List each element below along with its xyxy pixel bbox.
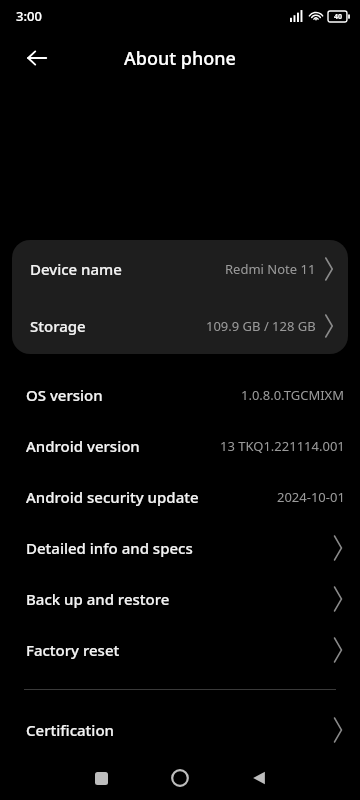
button[interactable]: OS version (0, 369, 360, 420)
staticText: 109.9 GB / 128 GB (206, 317, 316, 335)
staticText: 3:00 (16, 7, 42, 25)
button[interactable]: Recent apps (84, 761, 118, 795)
staticText: 2024-10-01 (277, 488, 345, 506)
button[interactable]: Certification (0, 704, 360, 755)
button[interactable]: Home (163, 761, 197, 795)
button[interactable]: Detailed info and specs (0, 522, 360, 573)
staticText: About phone (124, 46, 236, 71)
button[interactable]: Back (242, 761, 276, 795)
button[interactable]: Back up and restore (0, 573, 360, 624)
staticText: Detailed info and specs (26, 538, 193, 558)
staticText: Device name (30, 259, 122, 279)
staticText: 13 TKQ1.221114.001 (220, 437, 345, 455)
staticText: 1.0.8.0.TGCMIXM (241, 386, 345, 404)
staticText: Certification (26, 720, 114, 740)
button[interactable]: Android security update (0, 471, 360, 522)
staticText: Back up and restore (26, 589, 170, 609)
button[interactable]: Storage (12, 297, 348, 354)
staticText: Android version (26, 436, 140, 456)
button[interactable]: Device name (12, 240, 348, 297)
staticText: Redmi Note 11 (225, 260, 316, 278)
staticText: Storage (30, 316, 86, 336)
button[interactable]: Factory reset (0, 624, 360, 675)
button[interactable]: Android version (0, 420, 360, 471)
staticText: 40 (334, 12, 343, 22)
staticText: Factory reset (26, 640, 120, 660)
staticText: Android security update (26, 487, 199, 507)
staticText: OS version (26, 385, 103, 405)
button[interactable]: Back (18, 39, 56, 77)
